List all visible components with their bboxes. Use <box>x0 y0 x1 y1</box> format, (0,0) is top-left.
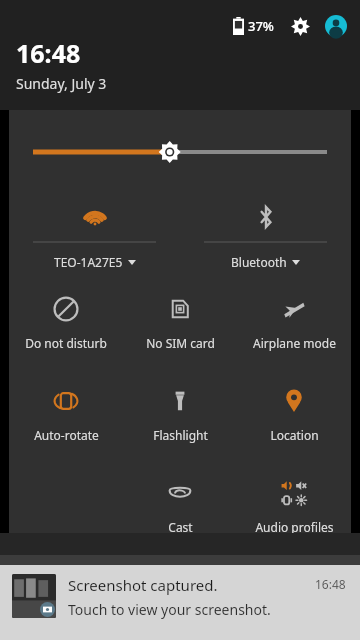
button[interactable]: Auto-rotate <box>9 372 123 464</box>
button[interactable]: Airplane mode <box>237 280 351 372</box>
staticText: TEO-1A27E5 <box>54 254 123 270</box>
button[interactable]: Flashlight <box>123 372 237 464</box>
button[interactable]: Audio profiles <box>237 464 351 533</box>
staticText: 37% <box>248 17 274 35</box>
staticText: Bluetooth <box>231 254 287 270</box>
button[interactable]: Do not disturb <box>9 280 123 372</box>
button[interactable]: Brightness <box>9 110 351 194</box>
staticText: Location <box>270 427 319 443</box>
button[interactable]: Cast <box>123 464 237 533</box>
staticText: Touch to view your screenshot. <box>68 600 271 619</box>
staticText: Screenshot captured. <box>68 575 218 595</box>
button[interactable]: Settings <box>288 14 312 38</box>
staticText: Audio profiles <box>255 519 334 533</box>
staticText: Airplane mode <box>253 335 336 351</box>
staticText: 16:48 <box>16 36 81 70</box>
staticText: Do not disturb <box>25 335 107 351</box>
staticText: No SIM card <box>146 335 215 351</box>
button[interactable]: TEO-1A27E5 <box>9 194 180 280</box>
button[interactable]: User <box>324 14 348 38</box>
staticText: Auto-rotate <box>34 427 99 443</box>
button[interactable]: No SIM card <box>123 280 237 372</box>
staticText: Cast <box>168 519 193 533</box>
staticText: Sunday, July 3 <box>16 74 107 93</box>
button[interactable]: Location <box>237 372 351 464</box>
staticText: 16:48 <box>315 576 346 592</box>
staticText: Flashlight <box>153 427 208 443</box>
button[interactable]: Screenshot captured. <box>0 565 360 640</box>
button[interactable]: Bluetooth <box>180 194 351 280</box>
